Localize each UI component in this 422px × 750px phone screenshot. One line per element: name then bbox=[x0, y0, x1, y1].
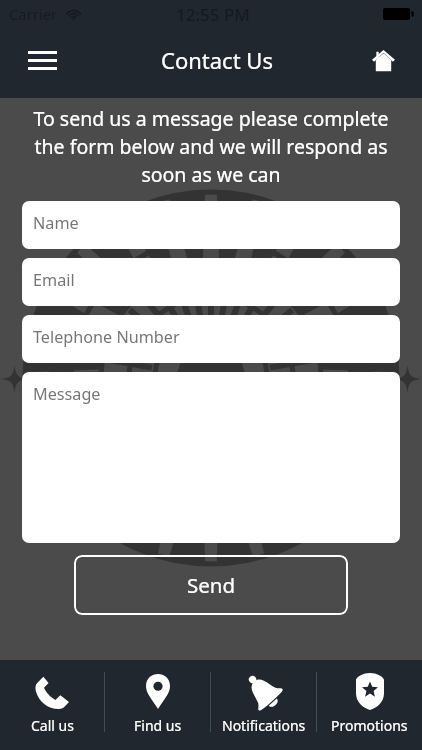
staticText: To send us a message please complete the… bbox=[16, 105, 406, 188]
button[interactable]: Call us bbox=[0, 660, 104, 750]
staticText: Send bbox=[187, 571, 236, 599]
staticText: Message bbox=[33, 383, 101, 405]
button[interactable]: Notifications bbox=[211, 660, 316, 750]
staticText: Call us bbox=[31, 716, 74, 735]
staticText: 12:55 PM bbox=[176, 3, 250, 26]
staticText: Telephone Number bbox=[33, 326, 180, 348]
button[interactable]: Find us bbox=[105, 660, 210, 750]
button[interactable]: Home bbox=[359, 36, 407, 84]
button[interactable]: Send bbox=[74, 555, 348, 615]
button[interactable]: Open navigation menu bbox=[14, 32, 70, 88]
staticText: Promotions bbox=[331, 716, 408, 735]
staticText: Carrier bbox=[9, 4, 58, 24]
staticText: Contact Us bbox=[161, 45, 273, 75]
button[interactable]: Promotions bbox=[317, 660, 422, 750]
staticText: Email bbox=[33, 269, 75, 291]
staticText: Notifications bbox=[222, 716, 306, 735]
button[interactable]: Email bbox=[22, 258, 400, 306]
staticText: Find us bbox=[134, 716, 182, 735]
staticText: Name bbox=[33, 212, 79, 234]
button[interactable]: Message bbox=[22, 372, 400, 543]
button[interactable]: Name bbox=[22, 201, 400, 249]
button[interactable]: Telephone Number bbox=[22, 315, 400, 363]
